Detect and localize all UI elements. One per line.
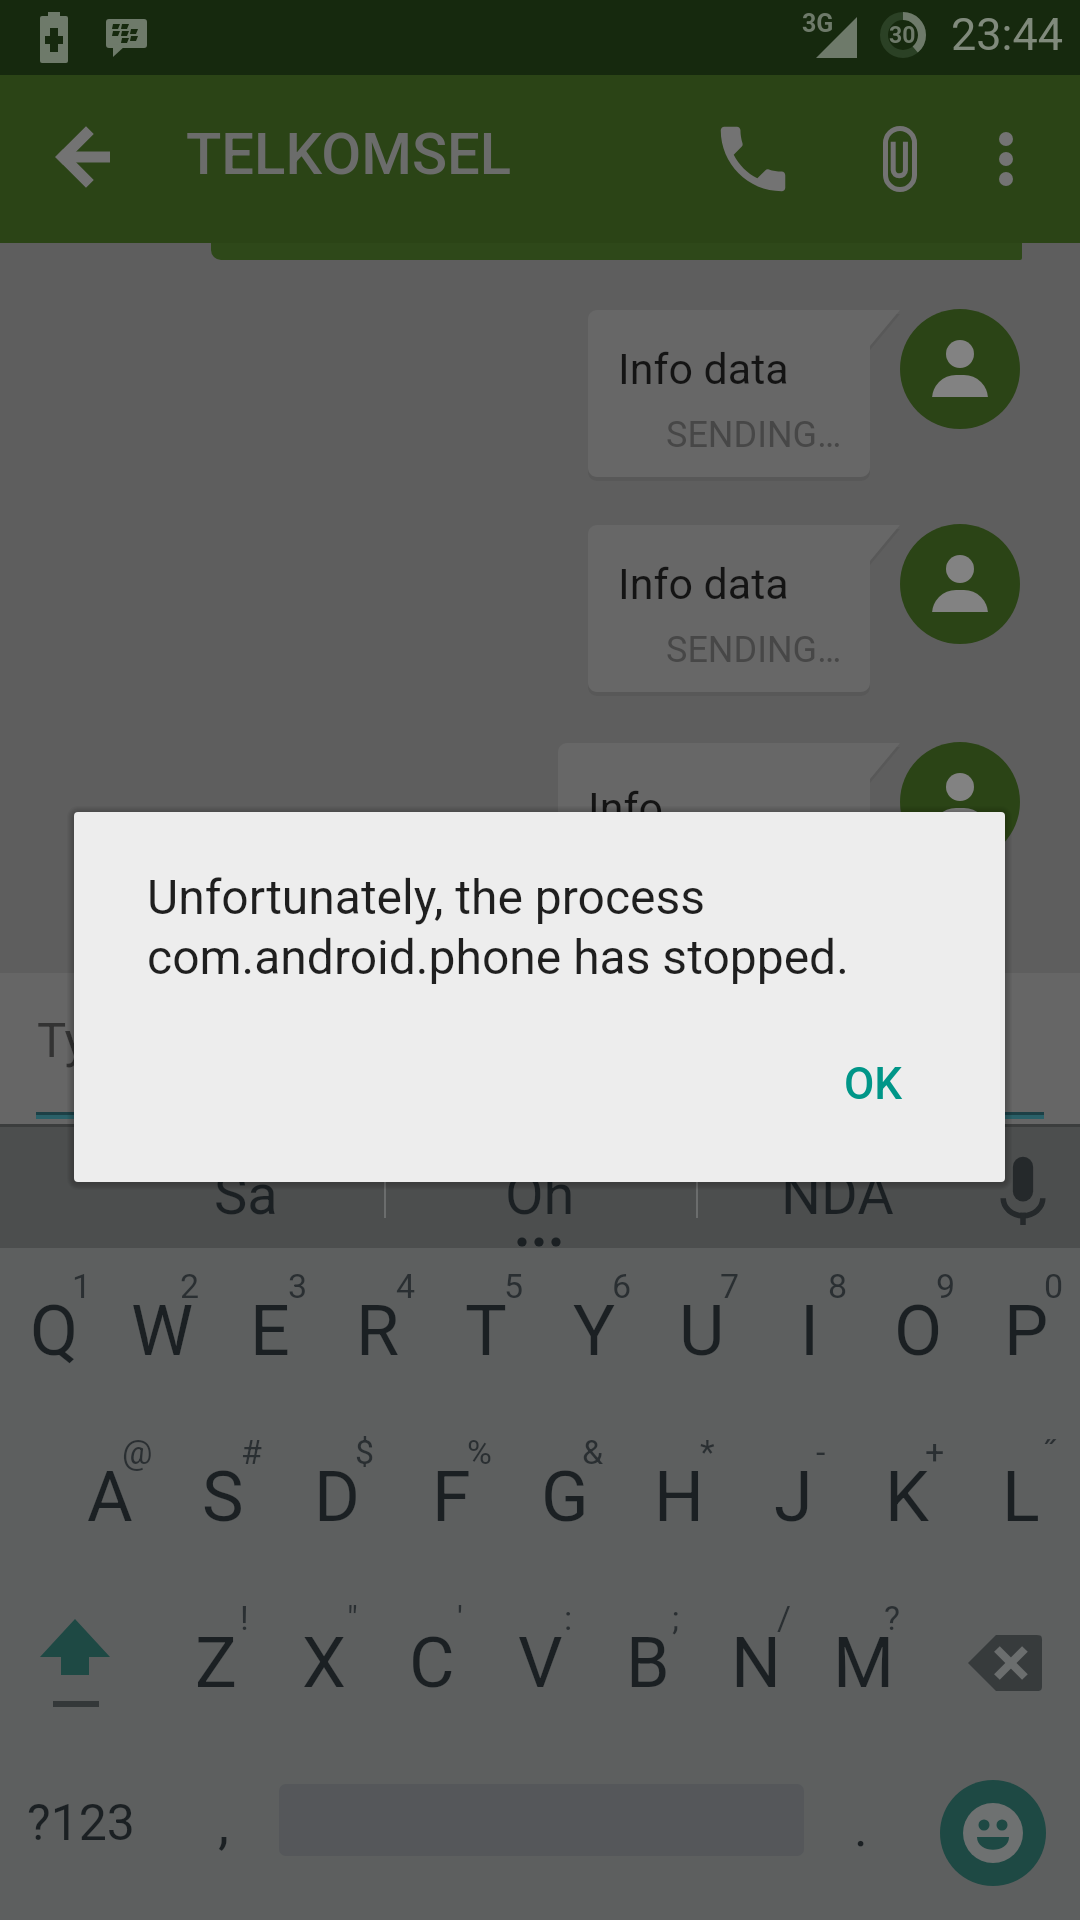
button[interactable]: Emoji (906, 1746, 1080, 1920)
staticText: Info data (618, 559, 789, 609)
button[interactable]: OK (799, 1036, 947, 1132)
staticText: % (467, 1432, 492, 1472)
staticText: $ (355, 1432, 375, 1472)
button[interactable]: Contact avatar (900, 309, 1020, 429)
button[interactable]: M (810, 1580, 918, 1746)
staticText: T (465, 1290, 507, 1372)
staticText: Z (195, 1622, 237, 1704)
button[interactable]: C (378, 1580, 486, 1746)
staticText: G (541, 1456, 589, 1538)
button[interactable]: Call (693, 99, 813, 219)
staticText: M (833, 1622, 895, 1704)
button[interactable]: Y (540, 1248, 648, 1414)
staticText: , (218, 1791, 230, 1857)
staticText: F (432, 1456, 471, 1538)
staticText: N (731, 1622, 781, 1704)
staticText: E (250, 1290, 290, 1372)
button[interactable]: P (972, 1248, 1080, 1414)
button[interactable]: E (216, 1248, 324, 1414)
staticText: 5 (504, 1266, 524, 1306)
staticText: : (564, 1598, 573, 1638)
button[interactable]: Type a message (0, 973, 1080, 1124)
button[interactable]: More options (946, 99, 1066, 219)
button[interactable]: O (864, 1248, 972, 1414)
staticText: Unfortunately, the process com.android.p… (147, 869, 849, 986)
button[interactable]: Shift (0, 1580, 150, 1746)
button[interactable]: Z (162, 1580, 270, 1746)
staticText: NDA (781, 1162, 894, 1228)
staticText: C (409, 1622, 455, 1704)
staticText: S (202, 1456, 244, 1538)
staticText: 8 (828, 1266, 848, 1306)
button[interactable]: J (736, 1414, 850, 1580)
staticText: SENDING… (666, 629, 842, 671)
staticText: 6 (612, 1266, 632, 1306)
staticText: ?123 (27, 1794, 135, 1853)
button[interactable]: N (702, 1580, 810, 1746)
button[interactable]: D (280, 1414, 394, 1580)
button[interactable]: ?123 (0, 1746, 166, 1920)
staticText: # (241, 1432, 262, 1472)
button[interactable]: K (850, 1414, 964, 1580)
staticText: ' (457, 1598, 463, 1638)
button[interactable]: R (324, 1248, 432, 1414)
button[interactable]: Sa (0, 1124, 384, 1248)
button[interactable]: X (270, 1580, 378, 1746)
staticText: H (654, 1456, 704, 1538)
staticText: U (679, 1290, 725, 1372)
staticText: 0 (1044, 1266, 1064, 1306)
staticText: / (777, 1598, 792, 1638)
staticText: ˝ (1043, 1432, 1056, 1472)
staticText: Y (573, 1290, 616, 1372)
staticText: @ (122, 1432, 153, 1472)
button[interactable]: Info data (588, 310, 900, 477)
staticText: D (314, 1456, 360, 1538)
button[interactable]: Backspace (930, 1580, 1080, 1746)
staticText: + (925, 1432, 945, 1472)
button[interactable]: Voice input (965, 1124, 1080, 1248)
staticText: V (518, 1622, 563, 1704)
staticText: 30 (889, 22, 916, 49)
button[interactable]: S (166, 1414, 280, 1580)
button[interactable]: Contact avatar (900, 524, 1020, 644)
button[interactable]: Info data (588, 525, 900, 692)
button[interactable]: T (432, 1248, 540, 1414)
button[interactable]: Info (558, 743, 900, 910)
button[interactable]: I (756, 1248, 864, 1414)
button[interactable]: A (53, 1414, 166, 1580)
staticText: 2 (180, 1266, 200, 1306)
staticText: ; (672, 1598, 680, 1638)
button[interactable]: G (508, 1414, 622, 1580)
button[interactable]: B (594, 1580, 702, 1746)
button[interactable]: U (648, 1248, 756, 1414)
button[interactable]: Attach (840, 99, 960, 219)
button[interactable]: F (394, 1414, 508, 1580)
staticText: 1 (72, 1266, 92, 1306)
staticText: . (854, 1798, 868, 1859)
staticText: O (894, 1290, 943, 1372)
staticText: TELKOMSEL (186, 120, 512, 188)
staticText: 7 (720, 1266, 740, 1306)
staticText: L (1002, 1456, 1040, 1538)
staticText: 3 (288, 1266, 308, 1306)
button[interactable]: H (622, 1414, 736, 1580)
staticText: - (816, 1432, 826, 1472)
button[interactable]: Oh (384, 1124, 696, 1248)
staticText: OK (844, 1058, 903, 1110)
staticText: X (302, 1622, 346, 1704)
staticText: " (347, 1598, 358, 1638)
button[interactable]: Back (24, 97, 144, 217)
staticText: A (87, 1456, 133, 1538)
staticText: 3G (802, 9, 834, 38)
button[interactable]: V (486, 1580, 594, 1746)
button[interactable]: NDA (696, 1124, 1008, 1248)
button[interactable]: W (108, 1248, 216, 1414)
button[interactable]: , (166, 1746, 278, 1920)
staticText: SENDING… (666, 414, 842, 456)
button[interactable]: Q (0, 1248, 108, 1414)
staticText: B (626, 1622, 670, 1704)
button[interactable]: Contact avatar (900, 742, 1020, 862)
button[interactable]: L (964, 1414, 1078, 1580)
